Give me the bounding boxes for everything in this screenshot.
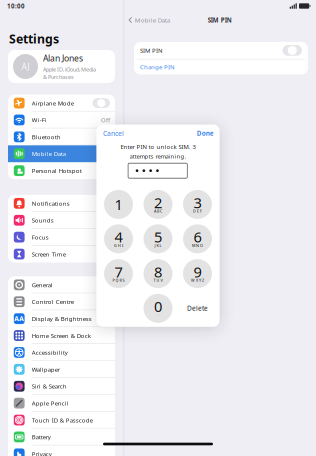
staticText: 6 <box>193 227 201 247</box>
staticText: P Q R S <box>112 278 124 283</box>
staticText: Off <box>101 116 110 124</box>
staticText: Notifications <box>32 199 70 207</box>
staticText: 4 <box>114 227 122 247</box>
staticText: A B C <box>154 208 162 214</box>
button[interactable]: Mobile Data <box>128 14 176 26</box>
button[interactable]: Cancel <box>103 127 133 139</box>
staticText: Apple ID, iCloud, Media <box>43 66 96 73</box>
staticText: Focus <box>32 233 49 241</box>
staticText: Change PIN <box>140 63 175 71</box>
button[interactable]: 6 <box>183 224 212 253</box>
button[interactable]: Sounds <box>8 212 115 229</box>
staticText: 0 <box>154 296 162 316</box>
staticText: Sounds <box>32 216 54 224</box>
staticText: Airplane Mode <box>32 99 74 107</box>
button[interactable]: Apple Pencil <box>8 395 115 412</box>
button[interactable]: Wallpaper <box>8 361 115 378</box>
staticText: Mobile Data <box>32 150 66 158</box>
staticText: Battery <box>32 433 51 441</box>
button[interactable]: 4 <box>104 224 133 253</box>
button[interactable]: 8 <box>143 259 172 288</box>
button[interactable]: Airplane Mode <box>8 95 115 111</box>
staticText: Bluetooth <box>32 133 61 141</box>
staticText: Siri & Search <box>32 382 67 390</box>
staticText: Enter PIN to unlock SIM. 3 <box>120 143 195 151</box>
button[interactable]: Control Centre <box>8 293 115 310</box>
staticText: 3 <box>193 192 201 212</box>
staticText: Control Centre <box>32 298 74 306</box>
button[interactable]: Bluetooth <box>8 128 115 145</box>
staticText: General <box>32 281 53 289</box>
button[interactable]: 3 <box>183 190 212 219</box>
staticText: Done <box>197 129 214 138</box>
staticText: Display & Brightness <box>32 315 92 323</box>
staticText: Accessibility <box>32 348 68 357</box>
staticText: Touch ID & Passcode <box>32 416 93 424</box>
button[interactable]: Wi-Fi <box>8 111 115 128</box>
button[interactable]: Notifications <box>8 195 115 212</box>
staticText: Home Screen & Dock <box>32 331 91 340</box>
button[interactable]: 0 <box>143 294 172 323</box>
button[interactable]: Delete <box>181 294 213 323</box>
button[interactable]: 7 <box>104 259 133 288</box>
button[interactable]: Privacy <box>8 445 115 456</box>
staticText: 8 <box>154 262 162 282</box>
staticText: Settings <box>9 30 59 47</box>
staticText: Wi-Fi <box>32 116 47 124</box>
button[interactable]: Touch ID & Passcode <box>8 412 115 428</box>
button[interactable]: Focus <box>8 229 115 246</box>
button[interactable]: Screen Time <box>8 246 115 262</box>
staticText: M N O <box>192 243 203 248</box>
button[interactable]: 9 <box>183 259 212 288</box>
staticText: Privacy <box>32 450 52 456</box>
staticText: 5 <box>154 227 162 247</box>
staticText: AA <box>14 314 24 323</box>
button[interactable]: Accessibility <box>8 344 115 361</box>
button[interactable]: 2 <box>143 190 172 219</box>
button[interactable]: Done <box>188 127 214 139</box>
button[interactable]: Mobile Data <box>8 145 115 162</box>
button[interactable]: 1 <box>104 190 133 219</box>
staticText: J K L <box>154 243 161 248</box>
staticText: & Purchases <box>43 73 74 80</box>
staticText: AJ <box>21 61 29 72</box>
staticText: 2 <box>154 192 162 212</box>
staticText: 10:00 <box>7 2 25 10</box>
staticText: attempts remaining. <box>129 152 186 160</box>
staticText: SIM PIN <box>208 16 232 24</box>
staticText: SIM PIN <box>140 46 163 54</box>
staticText: Delete <box>187 304 208 313</box>
button[interactable]: Personal Hotspot <box>8 162 115 179</box>
button[interactable]: Change PIN <box>134 59 308 74</box>
button[interactable]: AA <box>8 310 115 327</box>
staticText: 1 <box>114 194 122 214</box>
staticText: Cancel <box>103 129 124 138</box>
button[interactable]: AJ <box>8 50 115 83</box>
staticText: 7 <box>114 262 122 282</box>
staticText: Personal Hotspot <box>32 167 82 175</box>
staticText: Wallpaper <box>32 365 60 373</box>
staticText: G H I <box>114 243 123 248</box>
button[interactable]: Siri & Search <box>8 378 115 395</box>
staticText: T U V <box>153 278 162 283</box>
button[interactable]: Battery <box>8 428 115 445</box>
staticText: W X Y Z <box>191 278 204 283</box>
button[interactable]: 5 <box>143 224 172 253</box>
staticText: Apple Pencil <box>32 399 69 407</box>
button[interactable]: Home Screen & Dock <box>8 327 115 344</box>
staticText: D E F <box>193 208 202 214</box>
staticText: Alan Jones <box>43 52 83 64</box>
staticText: Mobile Data <box>135 16 170 24</box>
staticText: 9 <box>193 262 201 282</box>
button[interactable]: General <box>8 276 115 293</box>
staticText: Screen Time <box>32 250 66 258</box>
